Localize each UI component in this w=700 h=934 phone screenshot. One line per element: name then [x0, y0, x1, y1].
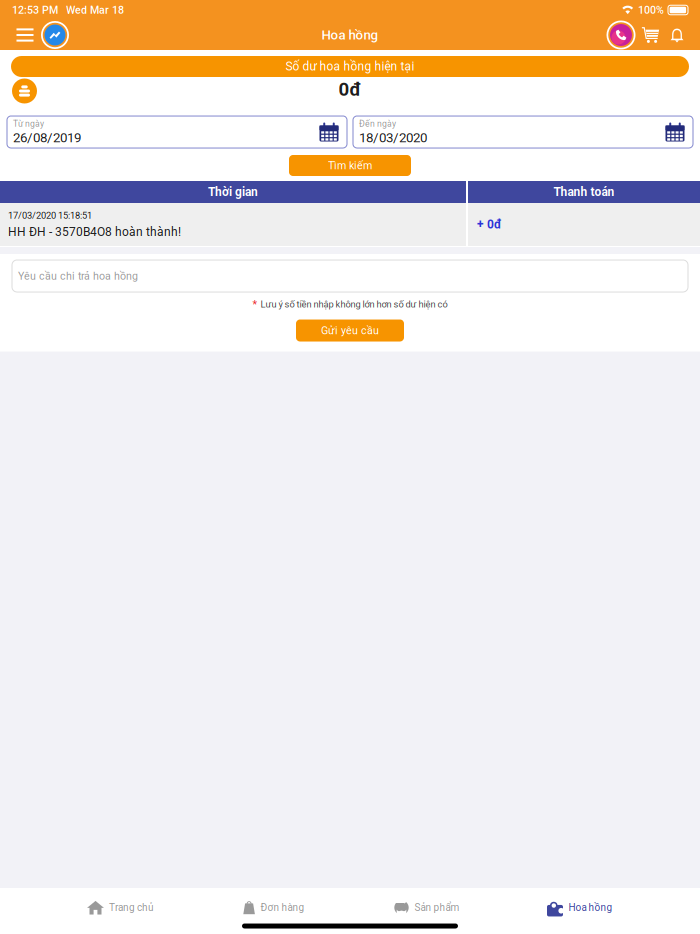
staticText: 18/03/2020 — [359, 130, 427, 145]
staticText: HH ĐH - 3570B4O8 hoàn thành! — [8, 225, 181, 239]
button[interactable]: Menu — [11, 20, 39, 50]
staticText: 17/03/2020 15:18:51 — [8, 210, 92, 221]
staticText: Tìm kiếm — [328, 159, 372, 172]
staticText: Sản phẩm — [414, 902, 459, 913]
button[interactable]: Call — [605, 20, 637, 50]
staticText: Đơn hàng — [260, 902, 304, 913]
staticText: 26/08/2019 — [13, 130, 81, 145]
staticText: 12:53 PM — [12, 4, 58, 16]
staticText: Từ ngày — [13, 119, 44, 129]
staticText: Trang chủ — [109, 902, 154, 913]
staticText: Đến ngày — [359, 119, 396, 129]
button[interactable]: Cart — [637, 20, 665, 50]
button[interactable]: Gửi yêu cầu — [296, 319, 404, 341]
staticText: Thời gian — [208, 185, 258, 199]
button[interactable]: Đến ngày — [353, 116, 693, 148]
staticText: + 0đ — [477, 217, 502, 232]
button[interactable]: Hoa hồng — [503, 891, 656, 923]
staticText: Số dư hoa hồng hiện tại — [285, 59, 414, 74]
staticText: Lưu ý số tiền nhập không lớn hơn số dư h… — [260, 299, 447, 310]
staticText: * — [252, 298, 257, 310]
button[interactable]: Tìm kiếm — [289, 155, 411, 176]
staticText: 100% — [638, 4, 664, 16]
staticText: Yêu cầu chi trả hoa hồng — [18, 270, 138, 282]
button[interactable]: Từ ngày — [7, 116, 347, 148]
staticText: Hoa hồng — [568, 902, 612, 913]
staticText: Gửi yêu cầu — [321, 324, 379, 337]
staticText: Hoa hồng — [321, 27, 378, 43]
button[interactable]: Sản phẩm — [350, 891, 503, 923]
button[interactable]: Trang chủ — [44, 891, 197, 923]
staticText: 0đ — [338, 78, 361, 100]
staticText: Wed Mar 18 — [66, 4, 124, 16]
button[interactable]: Đơn hàng — [197, 891, 350, 923]
button[interactable]: Messenger — [39, 20, 71, 50]
button[interactable]: Notifications — [665, 20, 689, 50]
staticText: Thanh toán — [553, 185, 614, 199]
